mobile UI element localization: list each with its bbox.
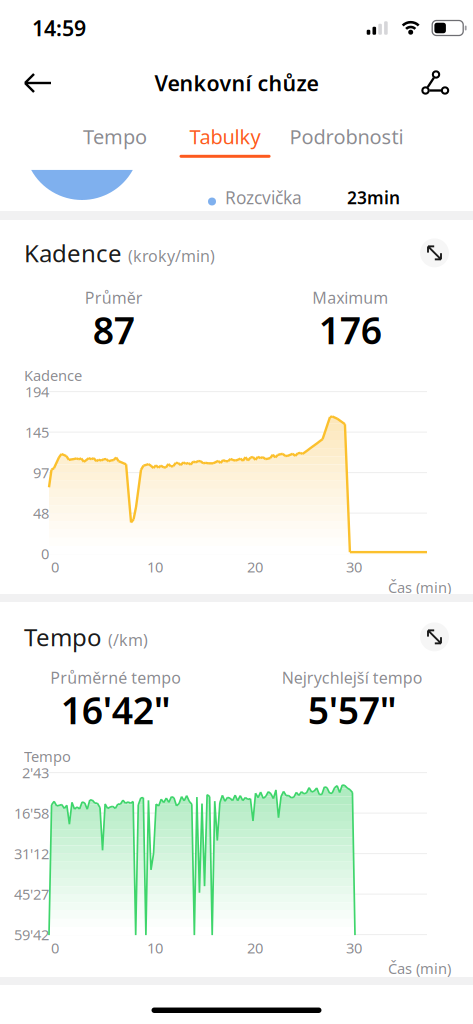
button[interactable]: Expand Tempo	[420, 622, 449, 651]
button[interactable]: Tempo	[66, 115, 163, 158]
staticText: 23min	[347, 186, 400, 209]
staticText: Podrobnosti	[290, 123, 404, 150]
staticText: Průměr	[85, 287, 143, 308]
staticText: Rozcvička	[225, 186, 302, 209]
staticText: 45'27	[14, 884, 49, 904]
staticText: Tempo	[24, 747, 71, 766]
staticText: 0	[51, 557, 59, 577]
staticText: Maximum	[312, 287, 388, 308]
staticText: 5'57"	[308, 685, 397, 735]
staticText: 2'43	[22, 763, 49, 782]
staticText: Kadence	[24, 237, 122, 269]
staticText: 14:59	[32, 14, 86, 42]
staticText: 145	[25, 422, 49, 442]
button[interactable]: Tabulky	[176, 115, 274, 158]
staticText: 48	[33, 503, 49, 523]
staticText: Tempo	[83, 123, 147, 150]
staticText: Kadence	[24, 366, 82, 385]
staticText: 0	[41, 544, 49, 563]
staticText: Tabulky	[189, 123, 260, 150]
staticText: 30	[346, 557, 362, 577]
staticText: Nejrychlejší tempo	[282, 667, 423, 688]
staticText: Průměrné tempo	[50, 667, 181, 688]
staticText: Venkovní chůze	[154, 69, 318, 97]
staticText: Tempo	[24, 621, 102, 653]
staticText: 87	[93, 305, 135, 355]
staticText: 194	[25, 382, 49, 401]
staticText: 176	[319, 305, 382, 355]
staticText: 31'12	[14, 844, 49, 863]
staticText: 10	[147, 557, 163, 577]
staticText: 97	[33, 463, 49, 482]
staticText: 16'58	[14, 803, 49, 823]
staticText: 20	[247, 557, 263, 577]
staticText: 59'42	[14, 925, 49, 944]
staticText: 20	[247, 938, 263, 958]
button[interactable]: Podrobnosti	[287, 115, 407, 158]
staticText: (kroky/min)	[128, 245, 215, 266]
staticText: Čas (min)	[388, 578, 451, 597]
button[interactable]: Back	[12, 59, 63, 107]
staticText: 30	[346, 938, 362, 958]
button[interactable]: Expand Kadence	[420, 238, 449, 267]
staticText: (/km)	[108, 629, 148, 650]
button[interactable]: Share	[410, 58, 461, 107]
staticText: Čas (min)	[388, 959, 451, 978]
staticText: 10	[147, 938, 163, 958]
staticText: 0	[51, 938, 59, 958]
staticText: 16'42"	[61, 685, 171, 735]
